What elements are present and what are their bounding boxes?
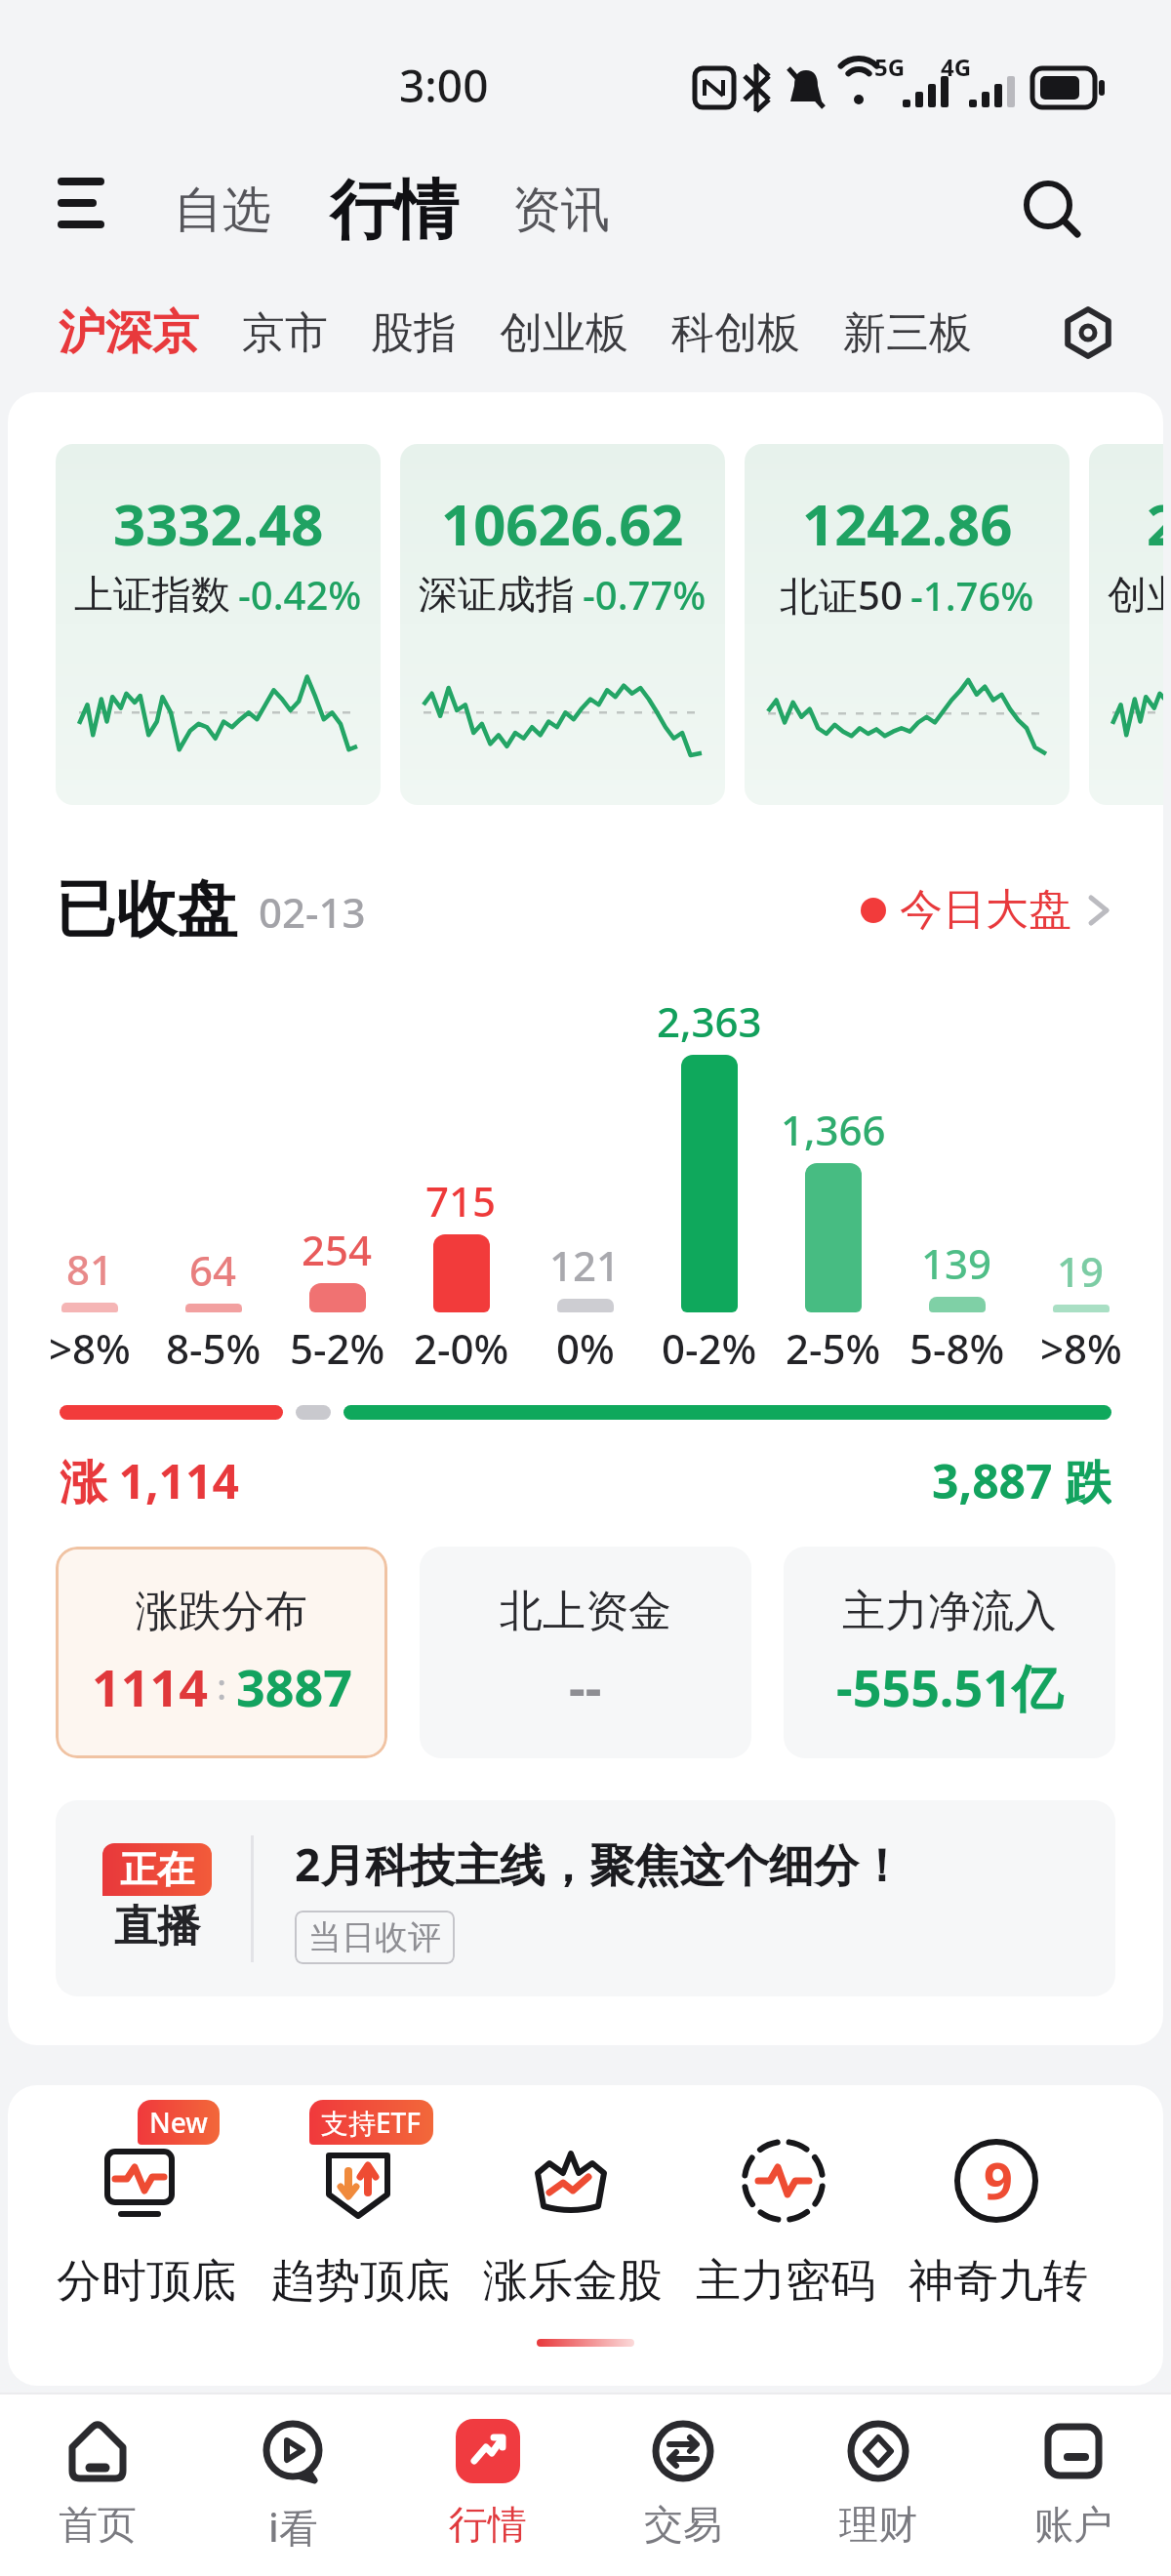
staticText: 创业板指 [1108, 570, 1163, 619]
button[interactable]: 京市 [242, 306, 328, 360]
staticText: 3887 [236, 1652, 352, 1721]
staticText: 8-5% [166, 1320, 262, 1373]
staticText: 支持ETF [321, 2104, 422, 2141]
button[interactable]: 行情 [330, 170, 459, 251]
button[interactable]: 交易 [585, 2395, 781, 2576]
staticText: 10626.62 [441, 485, 684, 562]
staticText: 行情 [449, 2500, 527, 2549]
staticText: 涨跌分布 [136, 1585, 307, 1638]
button[interactable]: 3332.48 [56, 444, 381, 805]
button[interactable]: 新三板 [843, 306, 972, 360]
staticText: 创业板 [500, 306, 628, 360]
staticText: 2030.58 [1147, 485, 1163, 562]
staticText: 4G [941, 51, 972, 83]
button[interactable]: 2030.58 [1089, 444, 1163, 805]
button[interactable] [1059, 303, 1117, 362]
staticText: 254 [302, 1222, 373, 1277]
button[interactable] [54, 174, 112, 232]
button[interactable]: 正在 [56, 1800, 1115, 1996]
staticText: 正在 [120, 1846, 194, 1893]
button[interactable]: 今日大盘 [861, 883, 1112, 937]
staticText: 首页 [59, 2500, 137, 2549]
button[interactable]: 理财 [781, 2395, 976, 2576]
staticText: 139 [921, 1235, 992, 1291]
staticText: 0% [556, 1320, 615, 1373]
button[interactable]: i看 [195, 2395, 390, 2576]
staticText: 5-8% [909, 1320, 1005, 1373]
button[interactable]: 自选 [174, 180, 271, 241]
staticText: 2,363 [657, 993, 762, 1049]
staticText: 股指 [371, 306, 457, 360]
staticText: 当日收评 [308, 1916, 441, 1958]
staticText: 京市 [242, 306, 328, 360]
staticText: 2-5% [786, 1320, 881, 1373]
staticText: 1242.86 [802, 485, 1013, 562]
staticText: -- [569, 1652, 602, 1721]
staticText: 今日大盘 [900, 883, 1071, 937]
staticText: 分时顶底 [57, 2253, 236, 2310]
staticText: 5G [874, 51, 906, 83]
button[interactable]: 1242.86 [745, 444, 1070, 805]
staticText: 神奇九转 [909, 2253, 1088, 2310]
staticText: >8% [1040, 1320, 1122, 1373]
staticText: 5-2% [290, 1320, 385, 1373]
staticText: 资讯 [512, 180, 610, 241]
staticText: 81 [66, 1241, 114, 1297]
staticText: 账户 [1034, 2500, 1112, 2549]
staticText: 行情 [330, 170, 459, 251]
staticText: i看 [268, 2500, 318, 2554]
staticText: 深证成指 [419, 570, 575, 619]
staticText: 715 [425, 1173, 497, 1228]
button[interactable]: 账户 [976, 2395, 1171, 2576]
staticText: -555.51亿 [836, 1652, 1063, 1721]
staticText: 主力净流入 [842, 1585, 1057, 1638]
staticText: 主力密码 [696, 2253, 875, 2310]
button[interactable]: 沪深京 [59, 303, 199, 362]
button[interactable]: 9 [892, 2100, 1105, 2310]
staticText: -0.42% [238, 568, 362, 621]
staticText: >8% [49, 1320, 131, 1373]
staticText: 3:00 [399, 55, 489, 116]
staticText: 2月科技主线，聚焦这个细分！ [295, 1833, 905, 1895]
staticText: New [149, 2104, 208, 2141]
button[interactable]: 北上资金 [420, 1547, 751, 1758]
button[interactable] [1021, 178, 1083, 240]
staticText: 9 [984, 2145, 1013, 2214]
staticText: 北证50 [780, 568, 903, 622]
staticText: -1.76% [910, 569, 1034, 622]
staticText: 北上资金 [500, 1585, 671, 1638]
button[interactable]: 支持ETF [253, 2100, 466, 2310]
button[interactable]: 10626.62 [400, 444, 725, 805]
staticText: 2-0% [414, 1320, 509, 1373]
staticText: 02-13 [259, 884, 366, 940]
staticText: 19 [1057, 1243, 1105, 1299]
staticText: 涨 1,114 [60, 1449, 239, 1508]
staticText: -0.77% [583, 568, 707, 621]
button[interactable]: 创业板 [500, 306, 628, 360]
button[interactable]: 股指 [371, 306, 457, 360]
button[interactable]: 科创板 [671, 306, 800, 360]
button[interactable]: New [39, 2100, 253, 2310]
button[interactable]: 主力密码 [679, 2100, 892, 2310]
staticText: 已收盘 [56, 871, 237, 947]
staticText: 交易 [644, 2500, 722, 2549]
staticText: 3332.48 [113, 485, 324, 562]
button[interactable]: 主力净流入 [784, 1547, 1115, 1758]
staticText: 121 [549, 1237, 621, 1293]
staticText: 自选 [174, 180, 271, 241]
staticText: 新三板 [843, 306, 972, 360]
staticText: 1,366 [781, 1102, 886, 1157]
staticText: 趋势顶底 [270, 2253, 450, 2310]
button[interactable]: 涨跌分布 [56, 1547, 387, 1758]
staticText: 上证指数 [74, 570, 230, 619]
button[interactable]: 资讯 [512, 180, 610, 241]
button[interactable]: 涨乐金股 [466, 2100, 679, 2310]
staticText: 直播 [114, 1900, 200, 1953]
staticText: 沪深京 [59, 303, 199, 362]
staticText: 科创板 [671, 306, 800, 360]
staticText: 64 [189, 1242, 237, 1298]
staticText: : [208, 1663, 236, 1711]
button[interactable]: 行情 [390, 2395, 585, 2576]
staticText: 3,887 跌 [932, 1449, 1111, 1508]
button[interactable]: 首页 [0, 2395, 195, 2576]
